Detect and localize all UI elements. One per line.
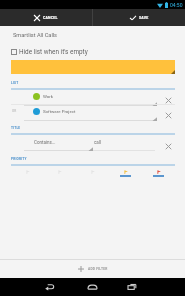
button[interactable]: Hide list when it's empty [11, 47, 88, 56]
button[interactable]: Contains... [24, 138, 93, 150]
staticText: call [94, 140, 101, 145]
button[interactable]: SAVE [93, 9, 185, 26]
staticText: ADD FILTER [88, 267, 108, 271]
staticText: Software Project [43, 109, 76, 114]
button[interactable]: Home [78, 278, 106, 296]
button[interactable]: Priority 5 [143, 168, 173, 182]
button[interactable]: Software Project [24, 106, 158, 120]
staticText: 04:50 [170, 2, 183, 8]
button[interactable]: Back [35, 278, 63, 296]
button[interactable]: Remove filter [160, 92, 176, 108]
button[interactable] [11, 60, 175, 74]
staticText: Hide list when it's empty [19, 48, 88, 56]
button[interactable]: Remove filter [160, 107, 176, 123]
staticText: LIST [11, 81, 19, 85]
staticText: Smartlist All Calls [13, 32, 58, 39]
button[interactable]: CANCEL [0, 9, 92, 26]
button[interactable]: call [93, 138, 155, 150]
button[interactable]: Remove filter [160, 138, 176, 154]
staticText: Contains... [34, 140, 56, 145]
button[interactable]: ADD FILTER [0, 260, 185, 278]
button[interactable]: Work [24, 91, 158, 105]
button[interactable]: Recent apps [118, 278, 146, 296]
staticText: TITLE [11, 126, 21, 130]
staticText: Work [43, 94, 54, 99]
staticText: OR [12, 109, 17, 113]
button[interactable]: Priority 4 [110, 168, 140, 182]
staticText: SAVE [139, 16, 149, 20]
staticText: PRIORITY [11, 157, 27, 161]
staticText: CANCEL [43, 16, 58, 20]
